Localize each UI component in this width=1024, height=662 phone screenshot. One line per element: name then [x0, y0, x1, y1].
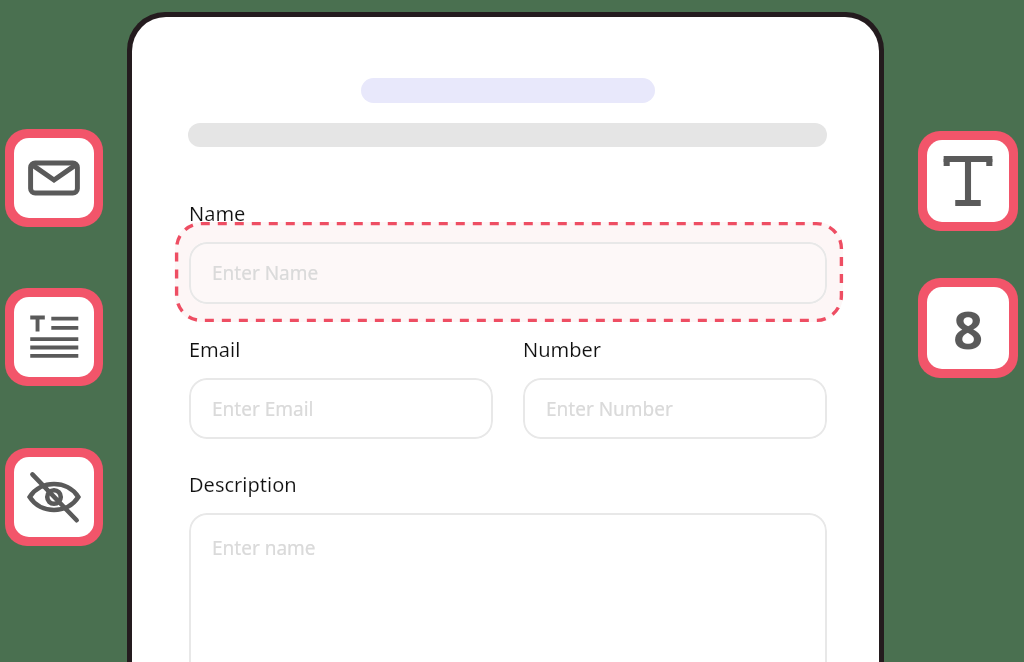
staticText: Enter Number — [546, 396, 673, 422]
staticText: Description — [189, 471, 297, 498]
button[interactable]: Password hidden field type — [14, 457, 94, 537]
button[interactable]: Text field type — [927, 140, 1009, 222]
staticText: Enter Email — [212, 396, 314, 422]
button[interactable]: Enter Email — [189, 378, 493, 439]
button[interactable]: Email field type — [14, 138, 94, 218]
staticText: 8 — [953, 293, 983, 364]
staticText: Name — [189, 200, 246, 227]
staticText: Email — [189, 336, 241, 363]
button[interactable]: Enter Number — [523, 378, 827, 439]
staticText: Enter name — [212, 535, 316, 561]
button[interactable]: Enter name — [189, 513, 827, 662]
button[interactable]: Text area field type — [14, 297, 94, 377]
button[interactable]: Enter Name — [189, 242, 827, 304]
button[interactable]: Number field type — [927, 287, 1009, 369]
staticText: Number — [523, 336, 602, 363]
staticText: Enter Name — [212, 260, 319, 286]
